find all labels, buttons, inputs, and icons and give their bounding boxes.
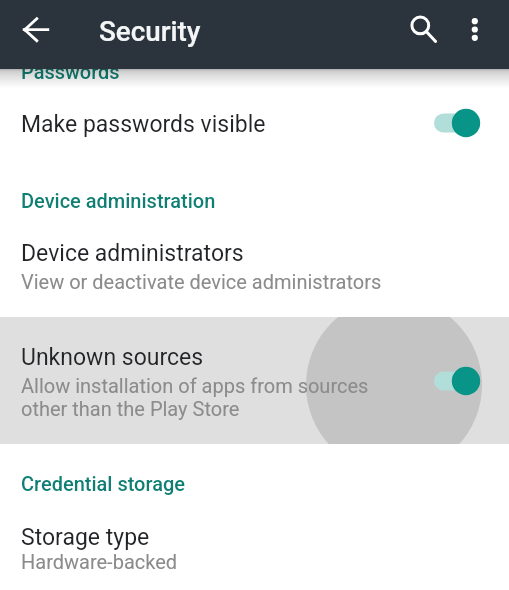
button[interactable]: Unknown sources, on: [428, 357, 494, 405]
staticText: Unknown sources: [21, 344, 204, 371]
staticText: Allow installation of apps from sources: [21, 374, 369, 397]
button[interactable]: Search: [396, 2, 444, 50]
button[interactable]: More options: [451, 6, 499, 54]
button[interactable]: Unknown sources: [0, 317, 509, 444]
staticText: View or deactivate device administrators: [21, 270, 382, 293]
staticText: Passwords: [21, 60, 120, 83]
button[interactable]: Make passwords visible, on: [428, 99, 494, 147]
button[interactable]: Device administrators: [0, 228, 509, 302]
staticText: Credential storage: [21, 472, 185, 495]
staticText: Storage type: [21, 524, 150, 551]
button[interactable]: Storage type: [0, 512, 509, 586]
staticText: Hardware-backed: [21, 550, 178, 573]
staticText: Device administrators: [21, 240, 244, 267]
staticText: Device administration: [21, 189, 216, 212]
staticText: Make passwords visible: [21, 111, 266, 138]
button[interactable]: Navigate up: [12, 6, 60, 54]
staticText: other than the Play Store: [21, 397, 240, 420]
button[interactable]: Make passwords visible: [0, 94, 509, 154]
staticText: Security: [99, 15, 201, 48]
